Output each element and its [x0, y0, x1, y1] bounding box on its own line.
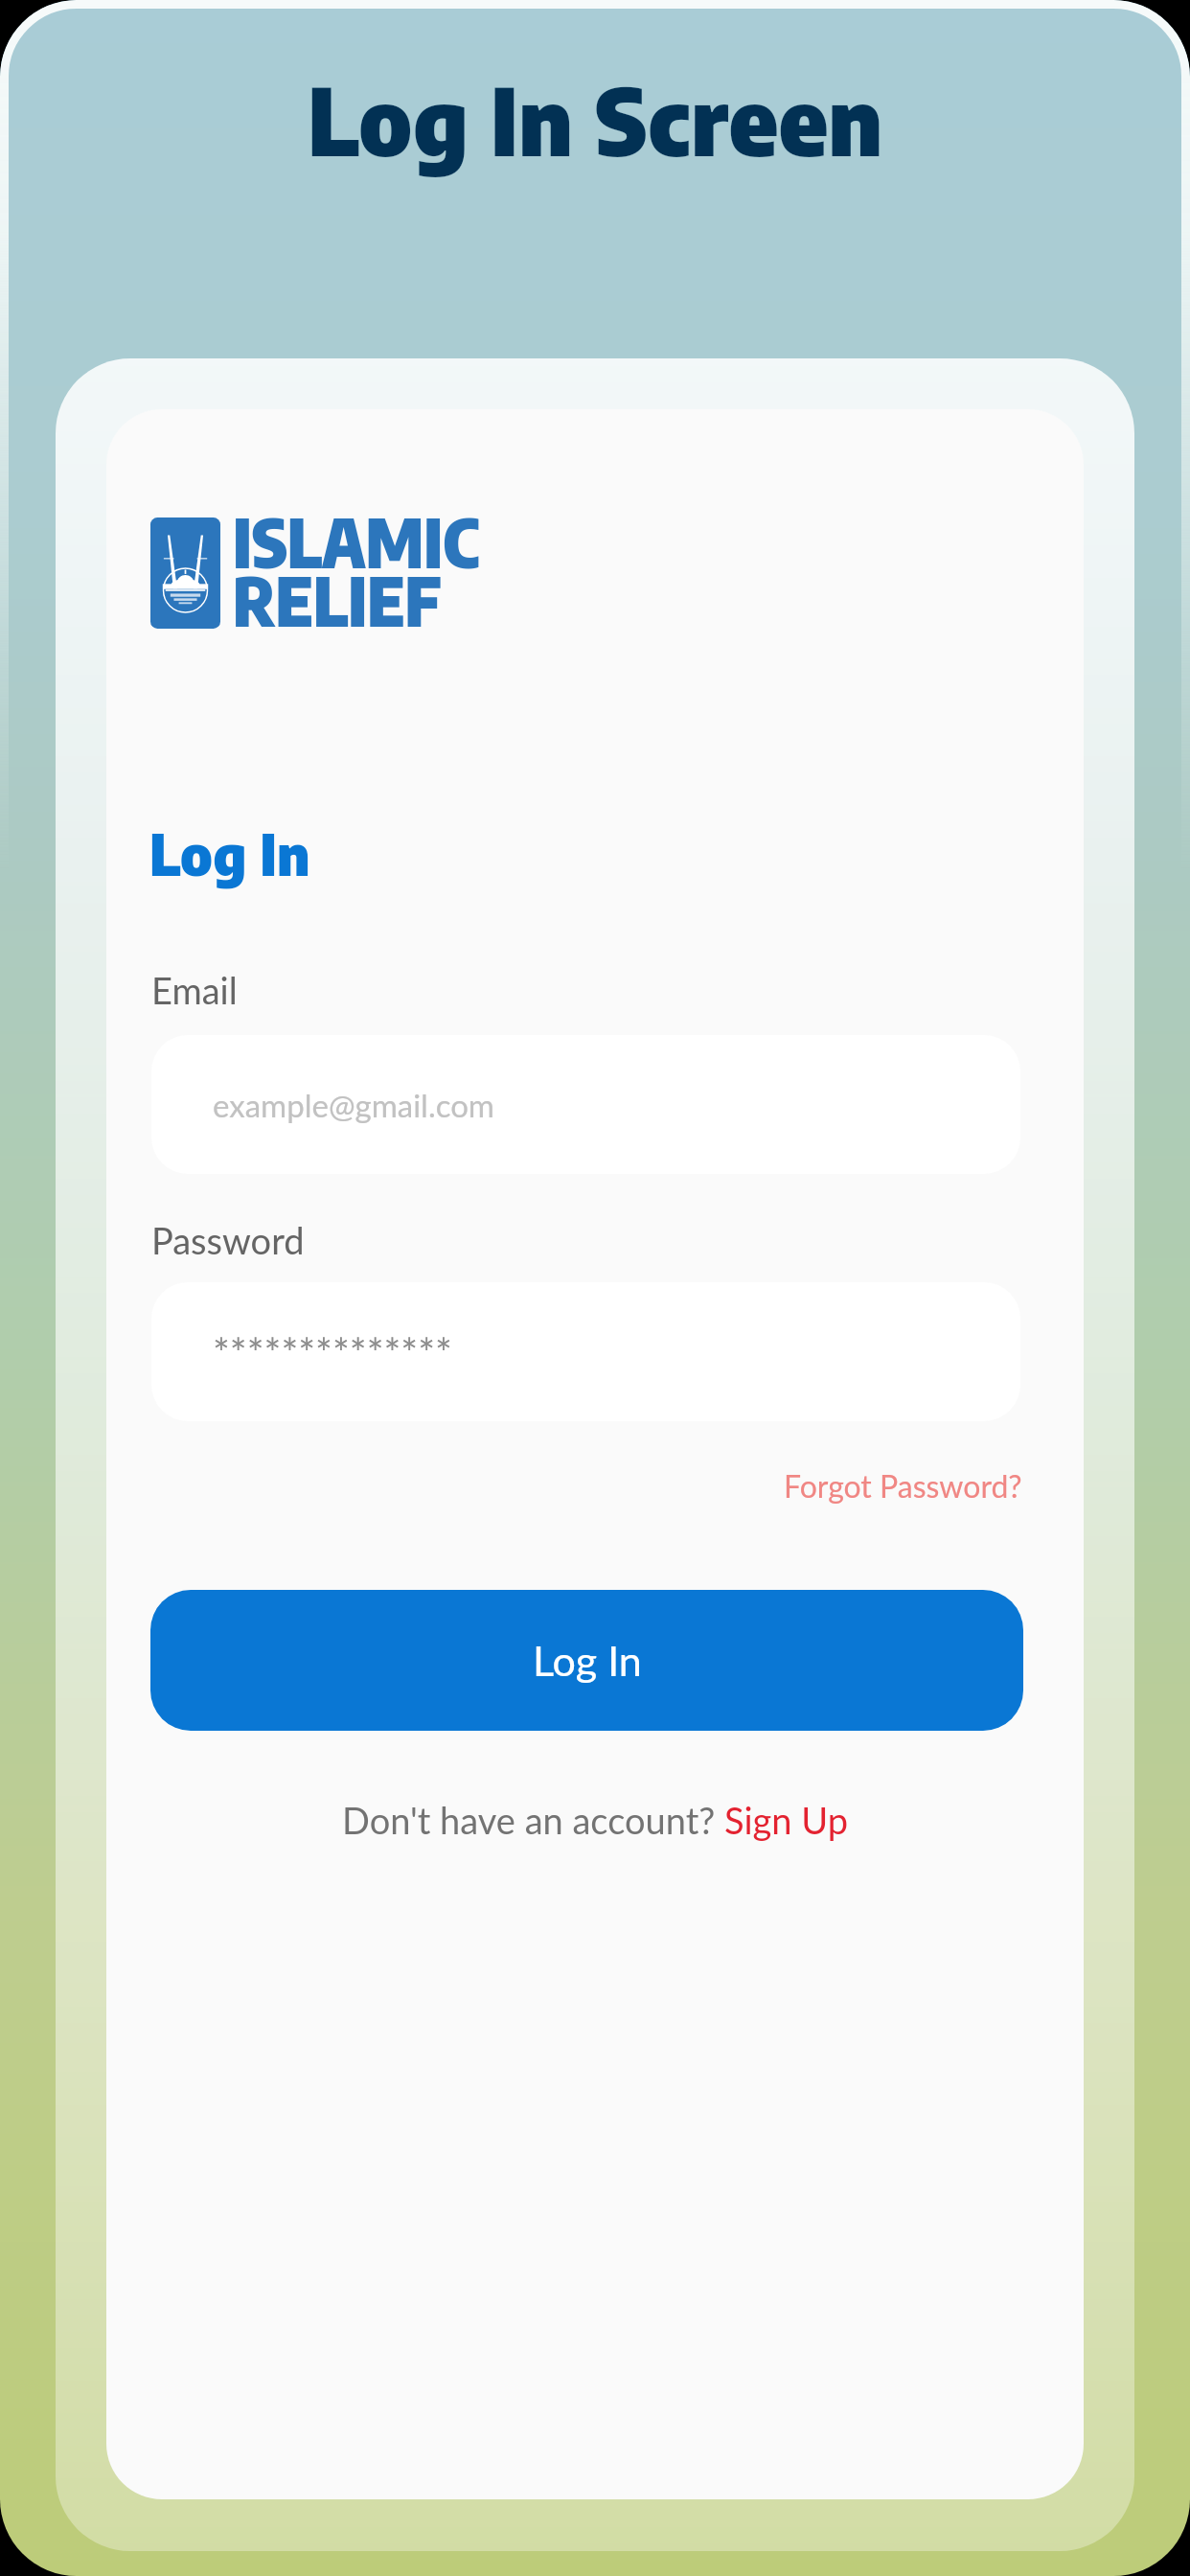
staticText: ISLAMIC [233, 499, 480, 583]
staticText: Email [151, 968, 238, 1012]
button[interactable]: example@gmail.com [151, 1035, 1020, 1174]
staticText: Log In Screen [308, 61, 883, 176]
staticText: Log In [533, 1636, 642, 1686]
staticText: ************** [213, 1328, 452, 1376]
button[interactable]: Log In [150, 1590, 1023, 1731]
button[interactable]: Don't have an account? Sign Up [334, 1790, 856, 1850]
other: Islamic Relief logo [150, 517, 220, 629]
button[interactable]: ************** [151, 1282, 1020, 1421]
staticText: Password [151, 1218, 305, 1262]
staticText: Log In [149, 818, 310, 887]
staticText: Forgot Password? [784, 1467, 1022, 1504]
staticText: RELIEF [233, 558, 442, 641]
staticText: Don't have an account? Sign Up [342, 1798, 848, 1842]
staticText: example@gmail.com [213, 1086, 495, 1124]
button[interactable]: Forgot Password? [106, 1467, 1084, 1504]
